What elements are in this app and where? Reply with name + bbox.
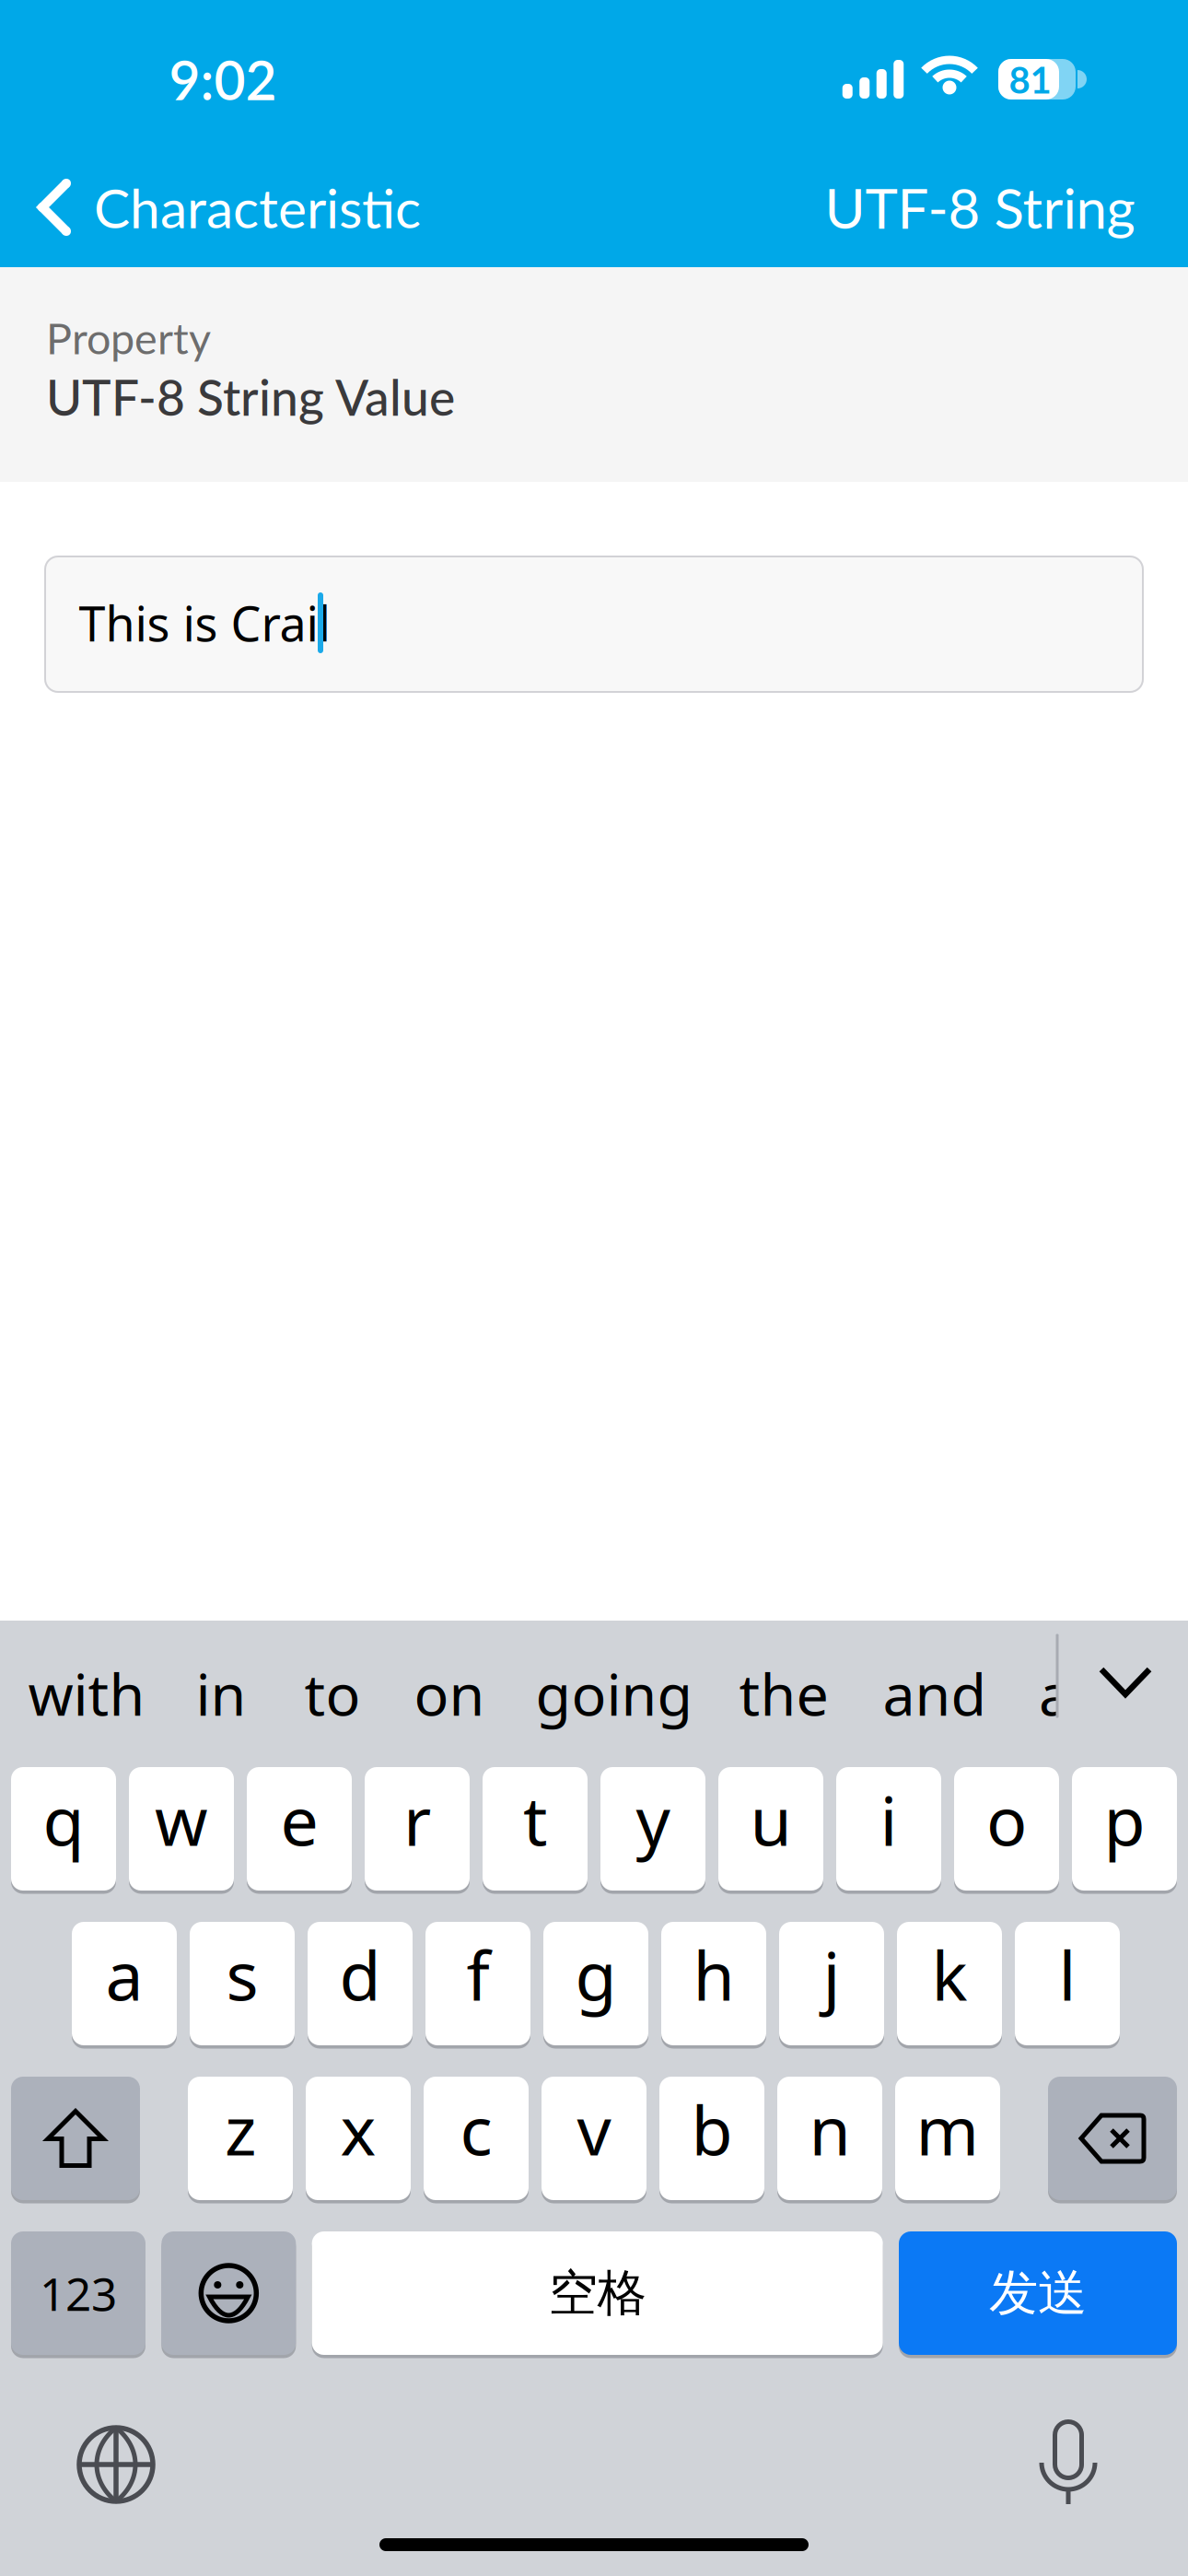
staticText: and	[883, 1655, 987, 1732]
staticText: u	[750, 1775, 792, 1864]
button[interactable]: q	[11, 1765, 116, 1892]
staticText: 81	[1009, 57, 1051, 101]
button[interactable]: c	[424, 2075, 529, 2202]
button[interactable]: to	[304, 1655, 361, 1732]
staticText: 空格	[549, 2263, 646, 2323]
staticText: 123	[40, 2263, 117, 2323]
button[interactable]: m	[895, 2075, 1000, 2202]
staticText: 9:02	[169, 47, 277, 112]
staticText: going	[536, 1655, 693, 1732]
button[interactable]: g	[543, 1920, 648, 2047]
staticText: n	[809, 2084, 850, 2174]
staticText: b	[691, 2084, 733, 2174]
staticText: q	[43, 1775, 84, 1864]
button[interactable]: Dictation	[1033, 2419, 1103, 2506]
staticText: h	[693, 1930, 734, 2019]
staticText: v	[577, 2084, 611, 2174]
staticText: Property	[46, 312, 211, 363]
staticText: d	[339, 1930, 381, 2019]
button[interactable]: r	[365, 1765, 470, 1892]
staticText: k	[932, 1930, 967, 2019]
staticText: e	[280, 1775, 318, 1864]
button[interactable]: Shift	[11, 2075, 140, 2202]
button[interactable]: Back	[38, 147, 421, 267]
button[interactable]: k	[897, 1920, 1002, 2047]
staticText: m	[916, 2084, 979, 2174]
button[interactable]: 发送	[899, 2230, 1177, 2357]
button[interactable]: z	[188, 2075, 293, 2202]
staticText: o	[986, 1775, 1027, 1864]
staticText: y	[636, 1775, 670, 1864]
staticText: This is Crail	[79, 591, 330, 655]
button[interactable]: the	[739, 1655, 828, 1732]
staticText: j	[823, 1930, 840, 2019]
button[interactable]: h	[661, 1920, 766, 2047]
staticText: s	[226, 1930, 258, 2019]
staticText: z	[225, 2084, 256, 2174]
button[interactable]: b	[659, 2075, 764, 2202]
button[interactable]: d	[308, 1920, 413, 2047]
button[interactable]: e	[247, 1765, 352, 1892]
button[interactable]: Delete	[1048, 2075, 1177, 2202]
button[interactable]: n	[777, 2075, 882, 2202]
button[interactable]: w	[129, 1765, 234, 1892]
button[interactable]: a	[72, 1920, 177, 2047]
staticText: UTF-8 String	[825, 174, 1135, 240]
button[interactable]: i	[836, 1765, 941, 1892]
button[interactable]: s	[190, 1920, 295, 2047]
staticText: to	[304, 1655, 361, 1732]
staticText: a	[105, 1930, 143, 2019]
button[interactable]: f	[425, 1920, 530, 2047]
staticText: r	[403, 1775, 431, 1864]
button[interactable]: Next keyboard	[76, 2425, 156, 2504]
staticText: x	[340, 2084, 376, 2174]
staticText: i	[880, 1775, 897, 1864]
staticText: t	[523, 1775, 547, 1864]
button[interactable]: 123	[11, 2230, 146, 2357]
staticText: a	[1039, 1655, 1071, 1732]
button[interactable]: going	[536, 1655, 693, 1732]
button[interactable]: with	[28, 1655, 145, 1732]
button[interactable]: Dismiss predictions	[1100, 1668, 1151, 1697]
staticText: UTF-8 String Value	[46, 367, 455, 426]
staticText: l	[1059, 1930, 1076, 2019]
button[interactable]: in	[196, 1655, 246, 1732]
button[interactable]: u	[718, 1765, 823, 1892]
staticText: g	[575, 1930, 617, 2019]
staticText: w	[155, 1775, 208, 1864]
button[interactable]: p	[1072, 1765, 1177, 1892]
button[interactable]: v	[542, 2075, 646, 2202]
button[interactable]: and	[883, 1655, 987, 1732]
button[interactable]: 空格	[312, 2230, 883, 2357]
button[interactable]: y	[600, 1765, 705, 1892]
staticText: 发送	[989, 2263, 1087, 2323]
button[interactable]: a	[1039, 1666, 1057, 1721]
staticText: in	[196, 1655, 246, 1732]
staticText: c	[460, 2084, 492, 2174]
staticText: with	[28, 1655, 145, 1732]
button[interactable]: Emoji	[161, 2230, 296, 2357]
button[interactable]: l	[1015, 1920, 1120, 2047]
button[interactable]: o	[954, 1765, 1059, 1892]
staticText: on	[414, 1655, 485, 1732]
staticText: the	[739, 1655, 828, 1732]
button[interactable]: t	[483, 1765, 588, 1892]
button[interactable]: x	[306, 2075, 411, 2202]
staticText: p	[1104, 1775, 1145, 1864]
staticText: f	[466, 1930, 489, 2019]
button[interactable]: j	[779, 1920, 884, 2047]
staticText: Characteristic	[94, 175, 421, 240]
button[interactable]: on	[414, 1655, 485, 1732]
